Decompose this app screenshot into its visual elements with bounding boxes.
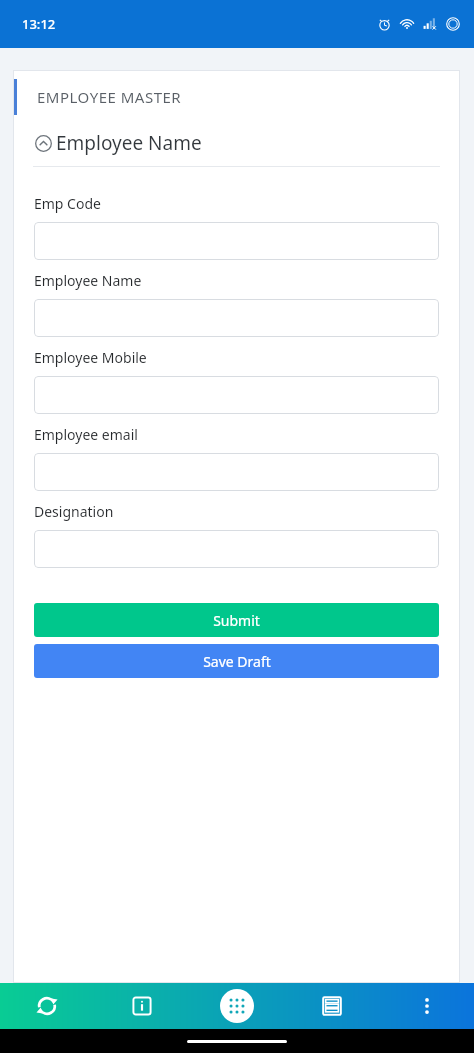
staticText: Employee Mobile bbox=[34, 348, 147, 367]
staticText: Save Draft bbox=[203, 652, 271, 671]
button[interactable] bbox=[34, 299, 439, 337]
staticText: Employee Name bbox=[34, 271, 142, 290]
button[interactable]: Submit bbox=[34, 603, 439, 637]
other: Collapse section bbox=[35, 135, 52, 152]
button[interactable]: Info bbox=[94, 983, 189, 1029]
button[interactable]: List bbox=[284, 983, 379, 1029]
button[interactable] bbox=[34, 376, 439, 414]
staticText: Designation bbox=[34, 502, 114, 521]
button[interactable] bbox=[34, 530, 439, 568]
staticText: Submit bbox=[213, 611, 260, 630]
button[interactable]: Sync bbox=[0, 983, 94, 1029]
staticText: 13:12 bbox=[22, 15, 56, 33]
staticText: Employee Name bbox=[56, 130, 202, 156]
button[interactable]: More options bbox=[379, 983, 474, 1029]
button[interactable]: Save Draft bbox=[34, 644, 439, 678]
staticText: EMPLOYEE MASTER bbox=[37, 87, 182, 107]
button[interactable]: Collapse section bbox=[13, 124, 460, 166]
staticText: Employee email bbox=[34, 425, 138, 444]
staticText: Emp Code bbox=[34, 194, 101, 213]
button[interactable] bbox=[34, 222, 439, 260]
button[interactable]: Apps menu bbox=[189, 983, 284, 1029]
button[interactable] bbox=[34, 453, 439, 491]
